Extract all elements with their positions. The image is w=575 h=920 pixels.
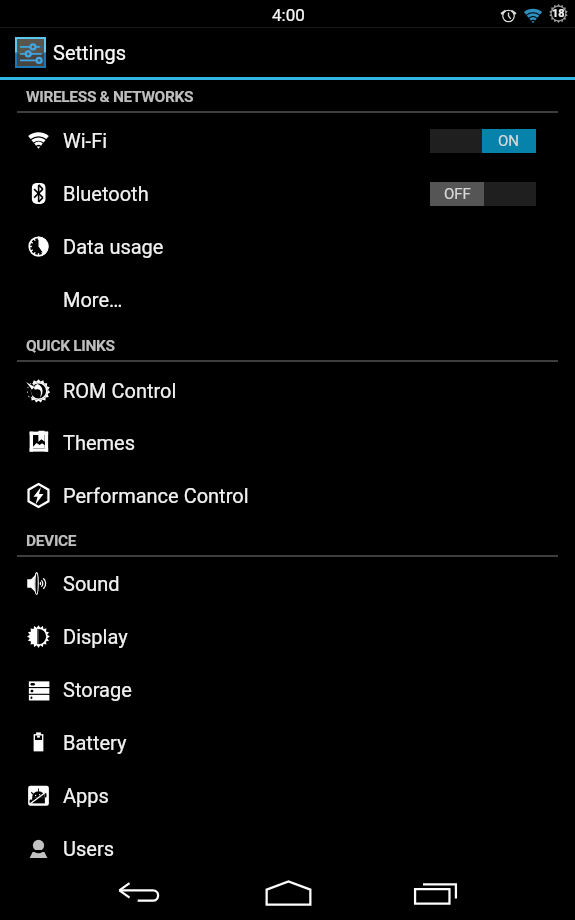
button[interactable]: Data usage [0,220,575,273]
staticText: Bluetooth [63,182,149,205]
staticText: Users [63,837,114,860]
button[interactable]: Display [0,610,575,663]
button[interactable]: More… [0,273,575,326]
staticText: 4:00 [272,5,305,25]
button[interactable]: ROM Control [0,364,575,417]
button[interactable]: Apps [0,769,575,822]
staticText: Sound [63,572,120,595]
staticText: Settings [53,41,127,64]
button[interactable]: OFF [430,182,536,206]
button[interactable]: Sound [0,557,575,610]
staticText: DEVICE [26,532,77,550]
staticText: ROM Control [63,379,177,402]
staticText: Themes [63,431,136,454]
button[interactable]: Performance Control [0,469,575,522]
staticText: More… [63,288,123,311]
staticText: WIRELESS & NETWORKS [26,88,194,106]
button[interactable]: Wi-Fi [0,114,575,167]
staticText: Performance Control [63,484,249,507]
button[interactable]: Battery [0,716,575,769]
staticText: Data usage [63,235,164,258]
staticText: Storage [63,678,132,701]
staticText: Battery [63,731,127,754]
button[interactable]: Bluetooth [0,167,575,220]
staticText: OFF [444,185,471,203]
button[interactable]: Recent apps [405,866,465,920]
staticText: 18 [552,7,565,20]
button[interactable]: Themes [0,416,575,469]
button[interactable]: Settings [0,28,575,77]
button[interactable]: Storage [0,663,575,716]
button[interactable]: ON [430,129,536,153]
button[interactable]: Users [0,822,575,875]
button[interactable]: Home [258,866,318,920]
button[interactable]: Back [109,866,169,920]
staticText: QUICK LINKS [26,337,115,355]
staticText: Apps [63,784,109,807]
staticText: Wi-Fi [63,129,108,152]
staticText: Display [63,625,128,648]
staticText: ON [498,132,520,150]
